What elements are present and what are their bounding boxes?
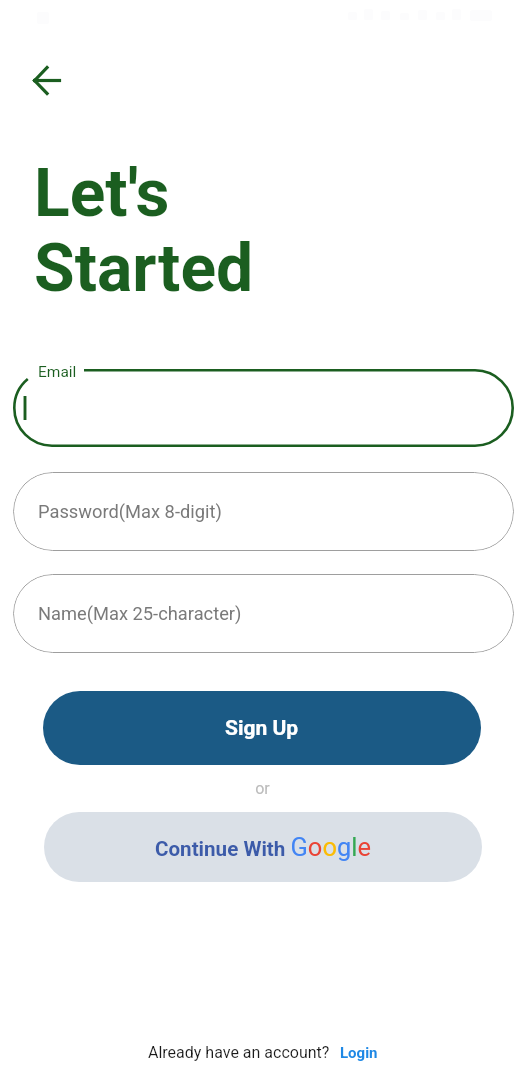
staticText: Email bbox=[38, 363, 77, 381]
button[interactable]: Password(Max 8-digit) bbox=[13, 472, 514, 551]
button[interactable]: Name(Max 25-character) bbox=[13, 574, 514, 653]
staticText: Name(Max 25-character) bbox=[38, 603, 242, 624]
staticText: Already have an account? bbox=[148, 1043, 330, 1062]
staticText: Login bbox=[340, 1044, 378, 1062]
staticText: Continue With Google bbox=[155, 832, 371, 862]
button[interactable]: Back bbox=[22, 56, 70, 104]
staticText: or bbox=[0, 779, 525, 798]
button[interactable]: Sign Up bbox=[43, 691, 481, 765]
button[interactable]: Login bbox=[340, 1044, 378, 1062]
staticText: Password(Max 8-digit) bbox=[38, 501, 222, 522]
button[interactable]: Continue With Google bbox=[44, 812, 482, 882]
staticText: Sign Up bbox=[225, 716, 299, 741]
staticText: Let's Started bbox=[34, 155, 254, 307]
